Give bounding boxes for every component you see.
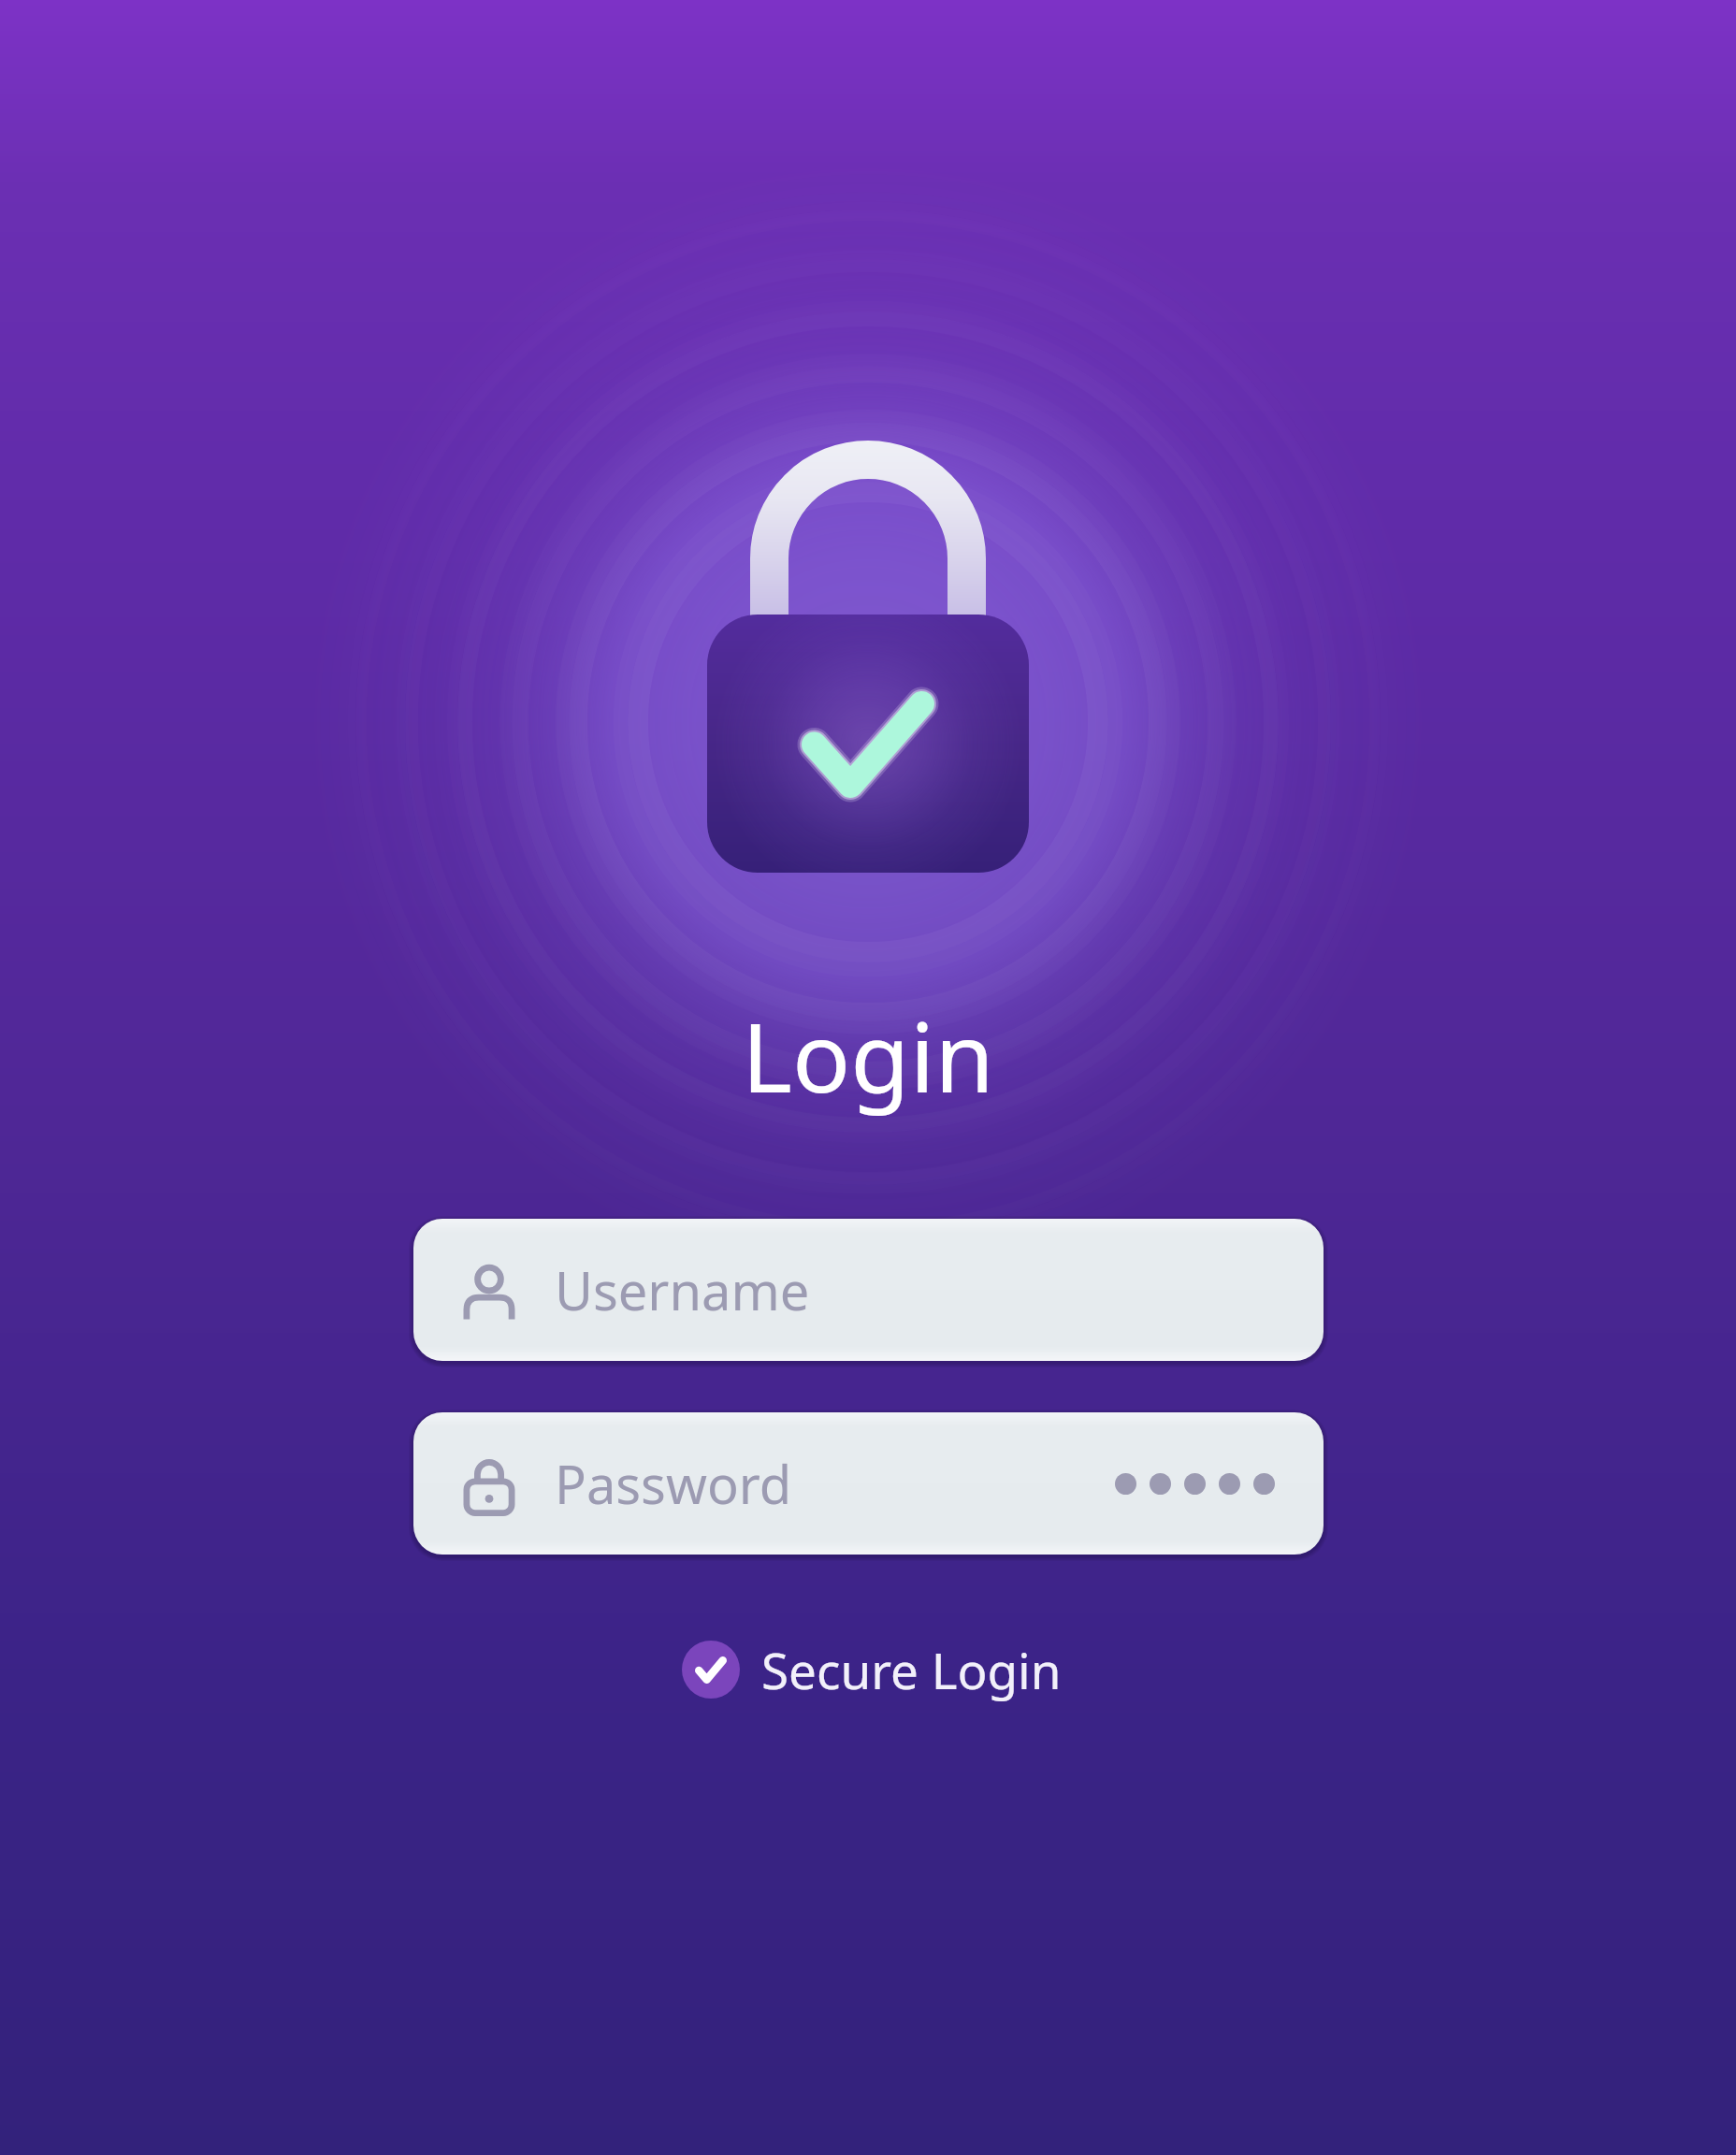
staticText: Password <box>555 1448 792 1519</box>
staticText: Secure Login <box>761 1636 1062 1703</box>
button[interactable]: Secure Login <box>673 1630 1063 1709</box>
staticText: Login <box>742 990 994 1121</box>
button[interactable]: Password <box>413 1412 1324 1555</box>
button[interactable]: Username <box>413 1219 1324 1361</box>
staticText: Username <box>555 1254 810 1325</box>
